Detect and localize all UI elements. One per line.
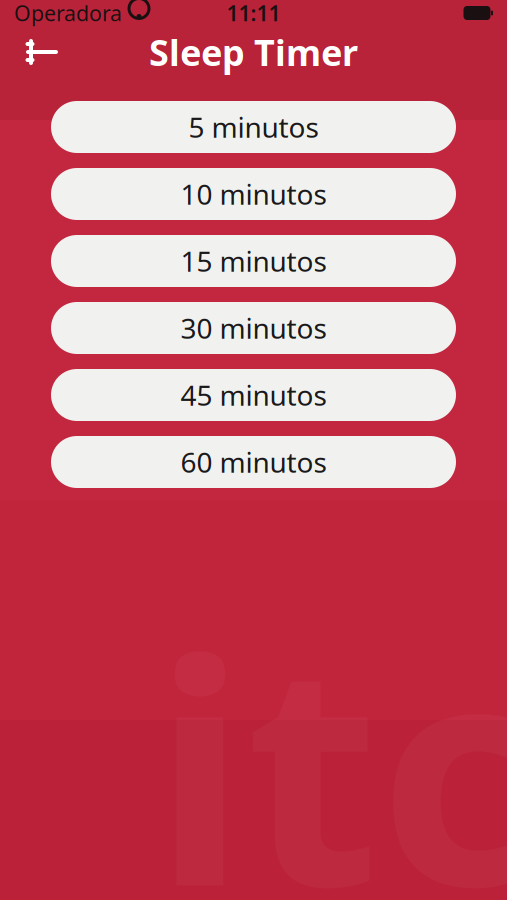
staticText: 60 minutos	[180, 443, 326, 481]
button[interactable]: 5 minutos	[51, 101, 456, 153]
staticText: 30 minutos	[180, 309, 326, 347]
button[interactable]: 45 minutos	[51, 369, 456, 421]
staticText: 10 minutos	[180, 175, 326, 213]
staticText: Operadora	[14, 0, 122, 27]
staticText: 11:11	[226, 0, 280, 27]
button[interactable]: 30 minutos	[51, 302, 456, 354]
button[interactable]: 10 minutos	[51, 168, 456, 220]
button[interactable]: 60 minutos	[51, 436, 456, 488]
button[interactable]: 15 minutos	[51, 235, 456, 287]
staticText: Sleep Timer	[149, 28, 358, 76]
staticText: 45 minutos	[180, 376, 326, 414]
button[interactable]: Back	[13, 27, 71, 77]
staticText: 5 minutos	[188, 108, 318, 146]
staticText: 15 minutos	[180, 242, 326, 280]
